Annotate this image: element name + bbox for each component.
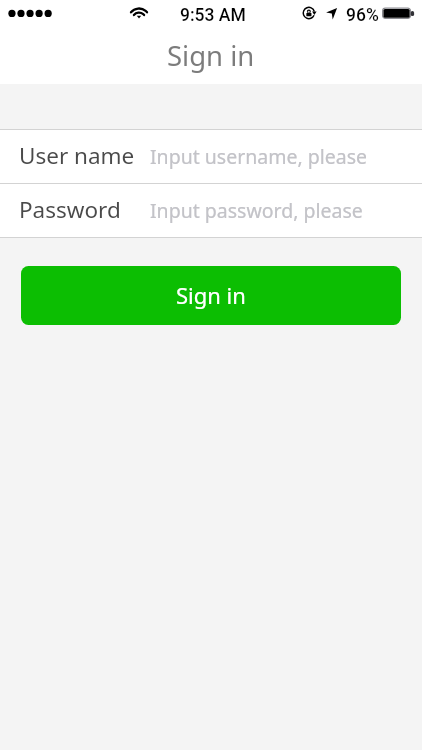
staticText: Sign in	[176, 280, 246, 310]
other: Rotation lock	[299, 3, 319, 23]
staticText: Password	[19, 194, 121, 225]
other: Location services	[324, 5, 340, 21]
staticText: Input username, please	[150, 143, 368, 170]
button[interactable]: User name	[0, 130, 422, 183]
button[interactable]: Sign in	[21, 266, 401, 325]
staticText: Sign in	[167, 37, 255, 74]
staticText: 9:53 AM	[180, 5, 246, 26]
button[interactable]: Password	[0, 184, 422, 237]
staticText: Input password, please	[150, 197, 363, 224]
staticText: 96%	[346, 5, 379, 26]
staticText: User name	[19, 140, 135, 171]
